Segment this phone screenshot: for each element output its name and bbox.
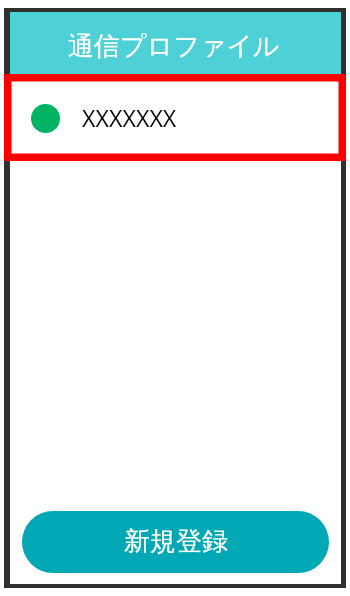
- button[interactable]: 新規登録: [22, 511, 329, 573]
- staticText: XXXXXXX: [82, 102, 177, 133]
- button[interactable]: Profile active: [10, 74, 341, 155]
- other: Profile active: [31, 104, 60, 133]
- staticText: 新規登録: [124, 525, 228, 558]
- staticText: 通信プロファイル: [68, 30, 280, 63]
